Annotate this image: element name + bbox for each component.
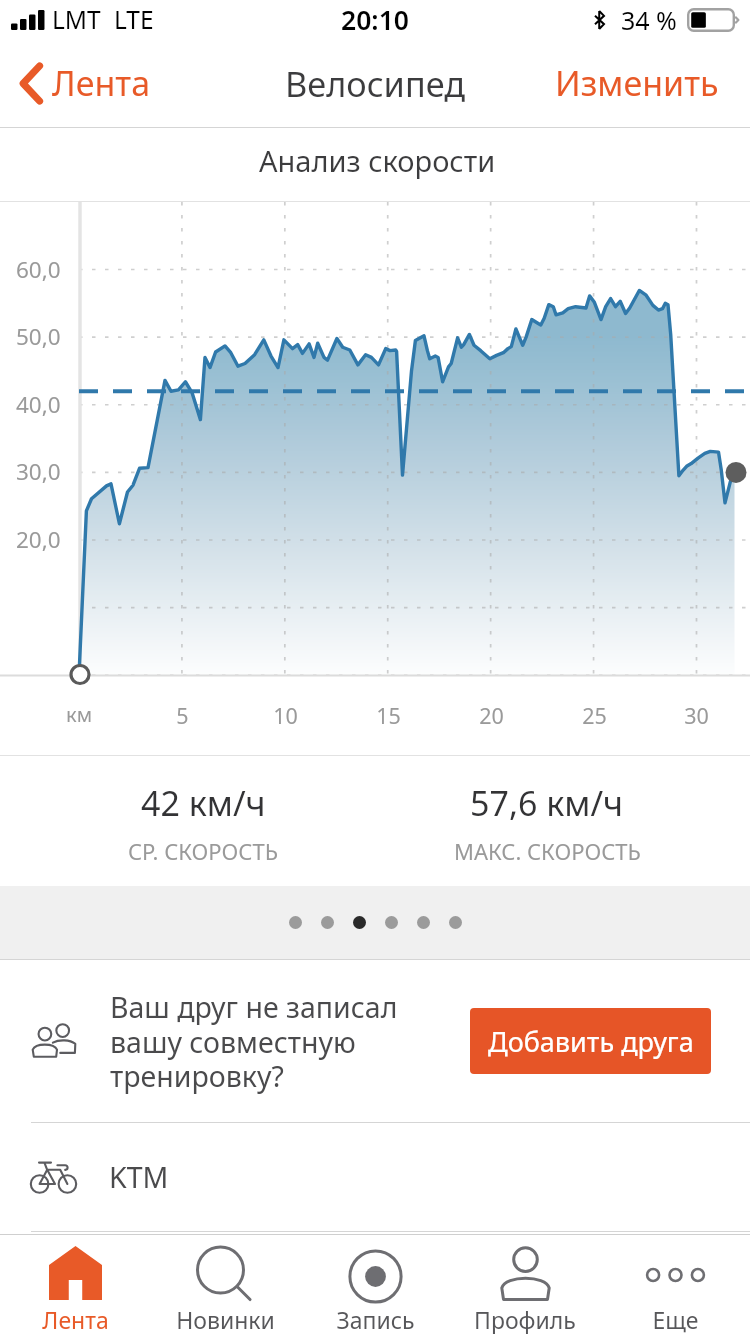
button[interactable]: Новинки	[150, 1235, 300, 1334]
staticText: 60,0	[16, 254, 61, 285]
other: Новинки	[199, 1246, 252, 1300]
button[interactable]: KTM	[0, 1123, 750, 1231]
staticText: 34 %	[621, 3, 677, 37]
staticText: 30	[684, 701, 709, 730]
staticText: км	[66, 701, 92, 728]
staticText: Анализ скорости	[259, 141, 496, 180]
button[interactable]: Лента	[0, 55, 171, 127]
button[interactable]: Лента	[0, 1235, 150, 1334]
button[interactable]: Профиль	[450, 1235, 600, 1334]
staticText: 20,0	[16, 524, 61, 555]
staticText: МАКС. СКОРОСТЬ	[454, 836, 641, 866]
staticText: 40,0	[16, 389, 61, 420]
staticText: Еще	[652, 1304, 699, 1334]
staticText: 25	[582, 701, 607, 730]
other: Еще	[644, 1246, 707, 1297]
staticText: Запись	[336, 1304, 415, 1334]
staticText: 5	[176, 701, 189, 730]
staticText: СР. СКОРОСТЬ	[128, 836, 278, 866]
other: Лента	[49, 1246, 102, 1300]
other: Запись	[349, 1246, 402, 1300]
staticText: 20	[479, 701, 504, 730]
staticText: Ваш друг не записал вашу совместную трен…	[110, 988, 398, 1095]
button[interactable]: Изменить	[529, 55, 750, 127]
staticText: 57,6 км/ч	[470, 780, 624, 826]
button[interactable]: Добавить друга	[470, 1008, 711, 1074]
staticText: Лента	[52, 60, 151, 106]
staticText: 20:10	[341, 2, 409, 38]
staticText: 15	[376, 701, 401, 730]
other: Профиль	[499, 1246, 552, 1300]
staticText: LTE	[114, 3, 154, 36]
staticText: 42 км/ч	[141, 780, 266, 826]
staticText: Изменить	[555, 60, 719, 106]
staticText: Профиль	[474, 1304, 576, 1334]
staticText: Добавить друга	[488, 1023, 694, 1060]
staticText: Велосипед	[285, 60, 466, 107]
staticText: KTM	[109, 1158, 169, 1197]
staticText: 30,0	[16, 456, 61, 487]
button[interactable]: Запись	[300, 1235, 450, 1334]
staticText: Лента	[42, 1304, 109, 1334]
staticText: 50,0	[16, 321, 61, 352]
button[interactable]: Еще	[600, 1235, 750, 1334]
staticText: 10	[273, 701, 298, 730]
staticText: LMT	[52, 3, 101, 36]
staticText: Новинки	[176, 1304, 275, 1334]
